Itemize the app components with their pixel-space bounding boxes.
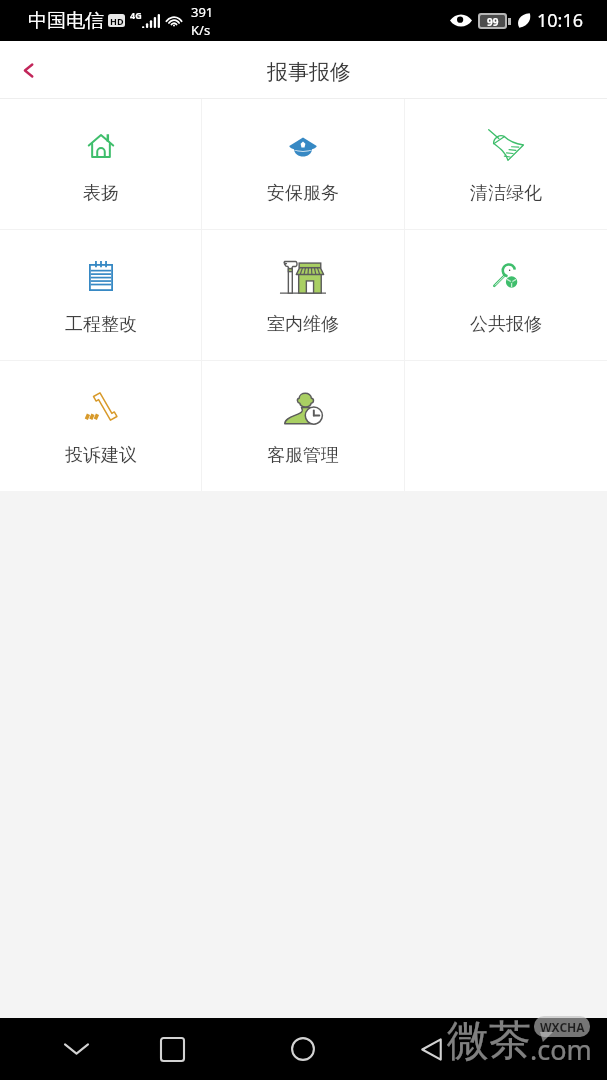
staticText: 391 xyxy=(191,3,214,21)
staticText: 微茶 xyxy=(447,1015,531,1068)
button[interactable]: 投诉建议 xyxy=(0,361,201,491)
button[interactable]: 公共报修 xyxy=(405,230,607,360)
button[interactable]: 清洁绿化 xyxy=(405,99,607,229)
staticText: 10:16 xyxy=(537,8,584,33)
button[interactable]: 工程整改 xyxy=(0,230,201,360)
staticText: K/s xyxy=(191,21,211,39)
staticText: WXCHA xyxy=(540,1019,585,1035)
button[interactable]: Back xyxy=(0,42,56,98)
staticText: 99 xyxy=(487,15,499,27)
staticText: 安保服务 xyxy=(267,182,339,205)
staticText: 工程整改 xyxy=(65,313,137,336)
button[interactable]: 表扬 xyxy=(0,99,201,229)
staticText: 室内维修 xyxy=(267,313,339,336)
button[interactable]: 安保服务 xyxy=(202,99,404,229)
staticText: 表扬 xyxy=(83,182,119,205)
staticText: .com xyxy=(530,1031,592,1068)
button[interactable]: Hide keyboard xyxy=(42,1018,110,1080)
button[interactable]: Home xyxy=(269,1018,337,1080)
button[interactable]: 客服管理 xyxy=(202,361,404,491)
staticText: 客服管理 xyxy=(267,444,339,467)
staticText: 报事报修 xyxy=(267,59,351,85)
button[interactable]: Back xyxy=(397,1018,465,1080)
staticText: HD xyxy=(110,15,124,27)
staticText: 4G xyxy=(130,9,142,21)
button[interactable]: Recents xyxy=(138,1018,206,1080)
staticText: 投诉建议 xyxy=(65,444,137,467)
staticText: 中国电信 xyxy=(28,9,104,33)
staticText: 清洁绿化 xyxy=(470,182,542,205)
staticText: 公共报修 xyxy=(470,313,542,336)
button[interactable]: 室内维修 xyxy=(202,230,404,360)
